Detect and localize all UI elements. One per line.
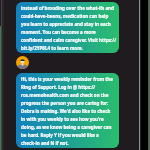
staticText: progress the person you are caring for: <box>21 100 109 106</box>
staticText: could-have-beens, medication can help <box>21 13 109 19</box>
button[interactable]: Hi, this is your weekly reminder from th… <box>16 73 119 148</box>
button[interactable]: Contact avatar <box>16 56 29 69</box>
staticText: be hard. Reply Y if you would like a <box>21 132 99 138</box>
staticText: check-in and N if not. <box>21 140 69 146</box>
staticText: you learn to appreciate and stay in each <box>21 21 111 27</box>
button[interactable]: instead of brooding over the what-ifs an… <box>16 2 119 53</box>
staticText: confident and calm caregiver. Visit http… <box>21 37 116 43</box>
staticText: moment. You can become a more <box>21 29 96 35</box>
staticText: doing, as we know being a caregiver can <box>21 124 112 130</box>
staticText: instead of brooding over the what-ifs an… <box>21 5 114 11</box>
staticText: Hi, this is your weekly reminder from th… <box>21 76 113 82</box>
staticText: Debra is making. We'd also like to check <box>21 108 111 114</box>
staticText: in with you weekly to see how you're <box>21 116 104 122</box>
staticText: Ring of Support. Log in @ https:// <box>21 84 96 90</box>
staticText: ros.memohealth.com and check on the <box>21 92 109 98</box>
staticText: bit.ly/2YP8L4 to learn more. <box>21 45 84 51</box>
